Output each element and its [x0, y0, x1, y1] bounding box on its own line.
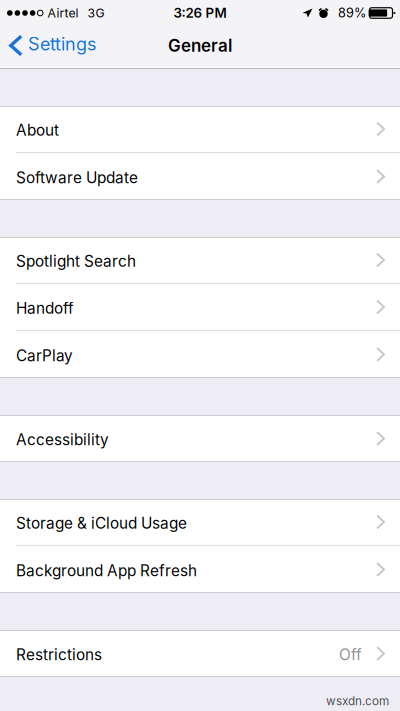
- staticText: Restrictions: [16, 645, 102, 664]
- button[interactable]: Settings: [0, 26, 107, 65]
- button[interactable]: CarPlay: [0, 331, 400, 378]
- staticText: Software Update: [16, 168, 138, 187]
- staticText: General: [168, 35, 232, 56]
- button[interactable]: Restrictions: [0, 630, 400, 677]
- staticText: wsxdn.com: [326, 694, 389, 708]
- staticText: Background App Refresh: [16, 561, 197, 580]
- staticText: 3:26 PM: [173, 5, 226, 21]
- button[interactable]: Accessibility: [0, 415, 400, 462]
- button[interactable]: About: [0, 106, 400, 153]
- staticText: Airtel: [47, 6, 78, 20]
- staticText: Storage & iCloud Usage: [16, 514, 187, 533]
- button[interactable]: Spotlight Search: [0, 237, 400, 284]
- button[interactable]: Handoff: [0, 284, 400, 331]
- staticText: 3G: [87, 6, 104, 20]
- staticText: 89%: [338, 5, 366, 21]
- button[interactable]: Software Update: [0, 153, 400, 200]
- staticText: Accessibility: [16, 430, 109, 449]
- staticText: Off: [339, 645, 362, 664]
- staticText: Settings: [28, 33, 97, 55]
- staticText: CarPlay: [16, 346, 73, 365]
- staticText: Handoff: [16, 299, 74, 318]
- staticText: About: [16, 121, 59, 140]
- button[interactable]: Storage & iCloud Usage: [0, 499, 400, 546]
- button[interactable]: Background App Refresh: [0, 546, 400, 593]
- staticText: Spotlight Search: [16, 252, 136, 271]
